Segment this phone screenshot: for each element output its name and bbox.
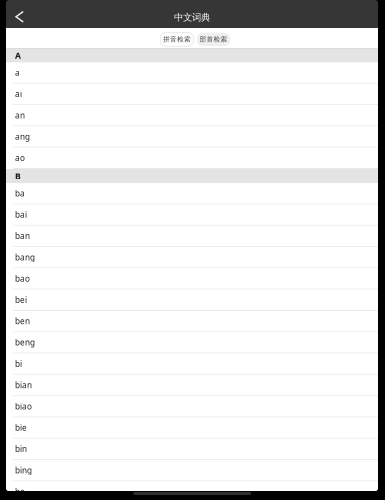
staticText: bang: [15, 252, 35, 263]
button[interactable]: ben: [6, 311, 378, 332]
staticText: ba: [15, 188, 25, 199]
button[interactable]: bin: [6, 439, 378, 460]
staticText: bao: [15, 273, 30, 284]
staticText: bing: [15, 465, 32, 476]
button[interactable]: ban: [6, 226, 378, 247]
staticText: ao: [15, 152, 25, 163]
button[interactable]: bie: [6, 417, 378, 439]
staticText: an: [15, 110, 25, 121]
button[interactable]: beng: [6, 332, 378, 354]
staticText: bi: [15, 358, 22, 369]
button[interactable]: a: [6, 62, 378, 84]
staticText: bian: [15, 379, 32, 391]
button[interactable]: bi: [6, 354, 378, 375]
staticText: 拼音检索: [163, 35, 191, 44]
button[interactable]: ai: [6, 84, 378, 105]
button[interactable]: bang: [6, 247, 378, 268]
button[interactable]: 部首检索: [197, 33, 230, 46]
staticText: ai: [15, 88, 22, 99]
button[interactable]: bing: [6, 460, 378, 481]
staticText: bo: [15, 486, 25, 497]
button[interactable]: Back: [6, 0, 40, 28]
staticText: A: [15, 50, 21, 61]
staticText: ban: [15, 230, 30, 241]
button[interactable]: bo: [6, 481, 378, 500]
staticText: biao: [15, 401, 32, 412]
staticText: bie: [15, 422, 27, 433]
staticText: bin: [15, 443, 27, 454]
staticText: 部首检索: [199, 35, 227, 44]
button[interactable]: bao: [6, 268, 378, 290]
button[interactable]: bian: [6, 375, 378, 396]
staticText: beng: [15, 337, 35, 348]
button[interactable]: biao: [6, 396, 378, 417]
staticText: bai: [15, 209, 27, 220]
button[interactable]: bei: [6, 290, 378, 311]
button[interactable]: ang: [6, 126, 378, 148]
staticText: 中文词典: [174, 11, 210, 23]
staticText: B: [15, 170, 21, 182]
staticText: ben: [15, 316, 30, 327]
button[interactable]: bai: [6, 204, 378, 226]
button[interactable]: ao: [6, 148, 378, 169]
staticText: a: [15, 67, 20, 78]
button[interactable]: an: [6, 105, 378, 126]
staticText: bei: [15, 294, 27, 305]
button[interactable]: 拼音检索: [160, 33, 194, 46]
staticText: ang: [15, 131, 30, 142]
button[interactable]: ba: [6, 183, 378, 204]
